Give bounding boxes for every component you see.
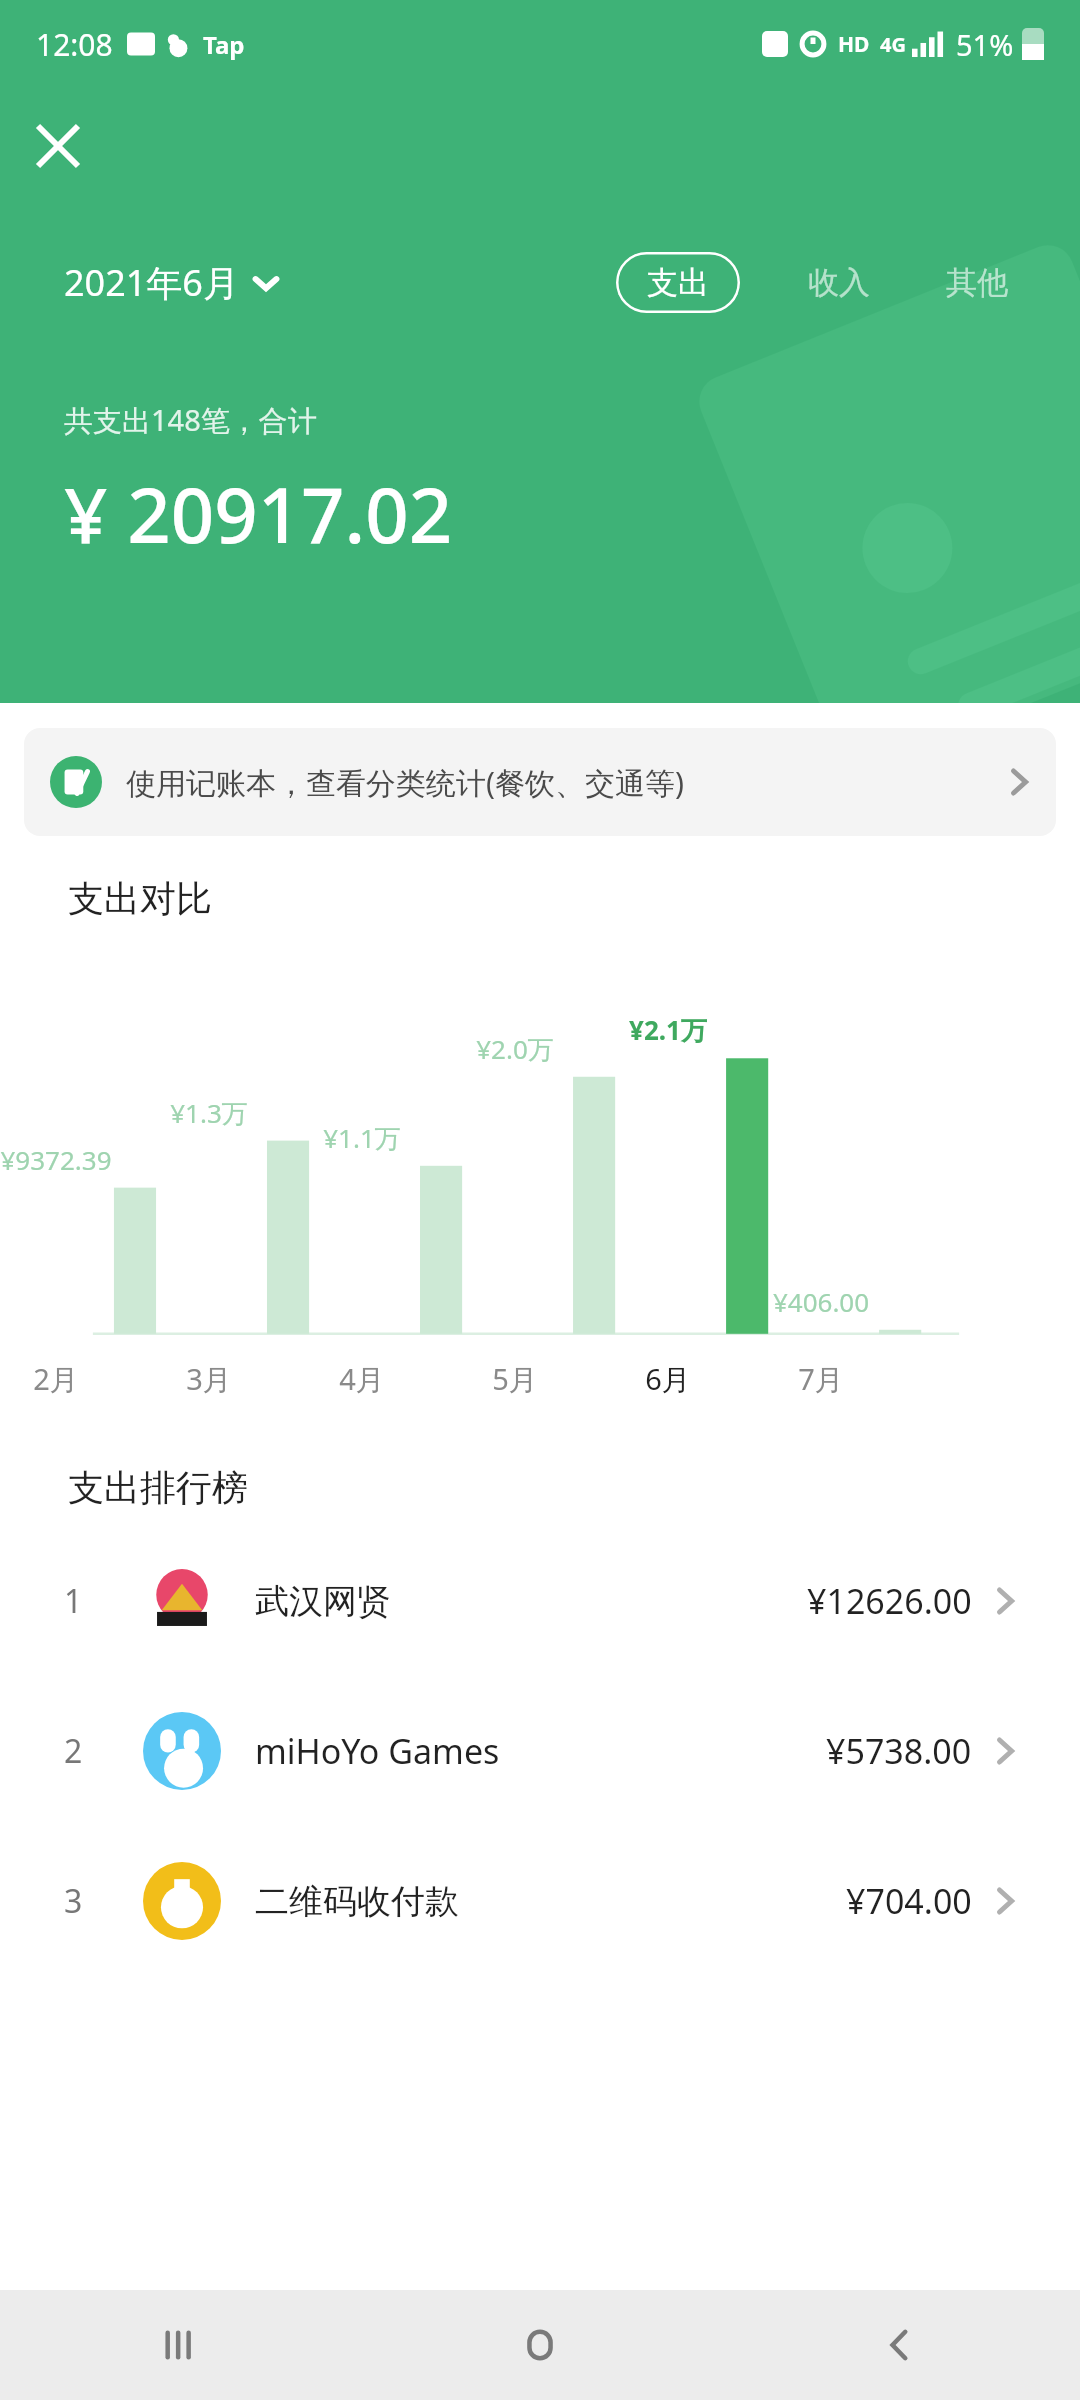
button[interactable]: 支出 (616, 252, 740, 313)
staticText: 4月 (292, 1359, 432, 1399)
staticText: 6月 (598, 1359, 738, 1399)
button[interactable]: Home (360, 2290, 720, 2400)
staticText: 12:08 (36, 24, 113, 65)
staticText: Tap (203, 28, 245, 61)
staticText: 7月 (751, 1359, 891, 1399)
staticText: 2021年6月 (64, 258, 239, 307)
staticText: ¥704.00 (846, 1878, 972, 1924)
staticText: 武汉网贤 (255, 1580, 391, 1623)
button[interactable]: Close (22, 110, 94, 182)
button[interactable]: Back (720, 2290, 1080, 2400)
staticText: ¥5738.00 (826, 1728, 972, 1774)
staticText: 收入 (808, 263, 870, 302)
staticText: 其他 (946, 263, 1008, 302)
staticText: 共支出148笔，合计 (64, 400, 317, 440)
button[interactable]: Recents (0, 2290, 360, 2400)
button[interactable]: 收入 (800, 253, 878, 312)
button[interactable]: 1 (0, 1562, 1080, 1640)
button[interactable]: 2 (0, 1712, 1080, 1790)
staticText: ¥2.0万 (445, 1031, 585, 1067)
staticText: 4G (880, 31, 906, 58)
button[interactable]: 其他 (938, 253, 1016, 312)
staticText: 5月 (445, 1359, 585, 1399)
staticText: ¥ 20917.02 (64, 462, 453, 566)
staticText: 3月 (139, 1359, 279, 1399)
staticText: ¥12626.00 (807, 1578, 972, 1624)
button[interactable]: 使用记账本，查看分类统计(餐饮、交通等) (24, 728, 1056, 836)
staticText: ¥1.3万 (139, 1095, 279, 1131)
staticText: HD (838, 30, 870, 59)
staticText: ¥9372.39 (0, 1142, 126, 1177)
staticText: ¥1.1万 (292, 1120, 432, 1156)
staticText: ¥406.00 (751, 1284, 891, 1319)
staticText: ¥2.1万 (598, 1012, 738, 1048)
staticText: 3 (64, 1879, 83, 1923)
staticText: 二维码收付款 (255, 1880, 459, 1923)
staticText: 2月 (0, 1359, 126, 1399)
staticText: miHoYo Games (255, 1728, 500, 1774)
staticText: 使用记账本，查看分类统计(餐饮、交通等) (126, 762, 684, 803)
staticText: 1 (64, 1579, 83, 1623)
button[interactable]: 2021年6月 (64, 250, 279, 315)
staticText: 支出对比 (68, 876, 212, 921)
staticText: 支出 (647, 263, 709, 302)
button[interactable]: 3 (0, 1862, 1080, 1940)
staticText: 51% (956, 25, 1014, 64)
staticText: 支出排行榜 (68, 1465, 248, 1510)
staticText: 2 (64, 1729, 83, 1773)
